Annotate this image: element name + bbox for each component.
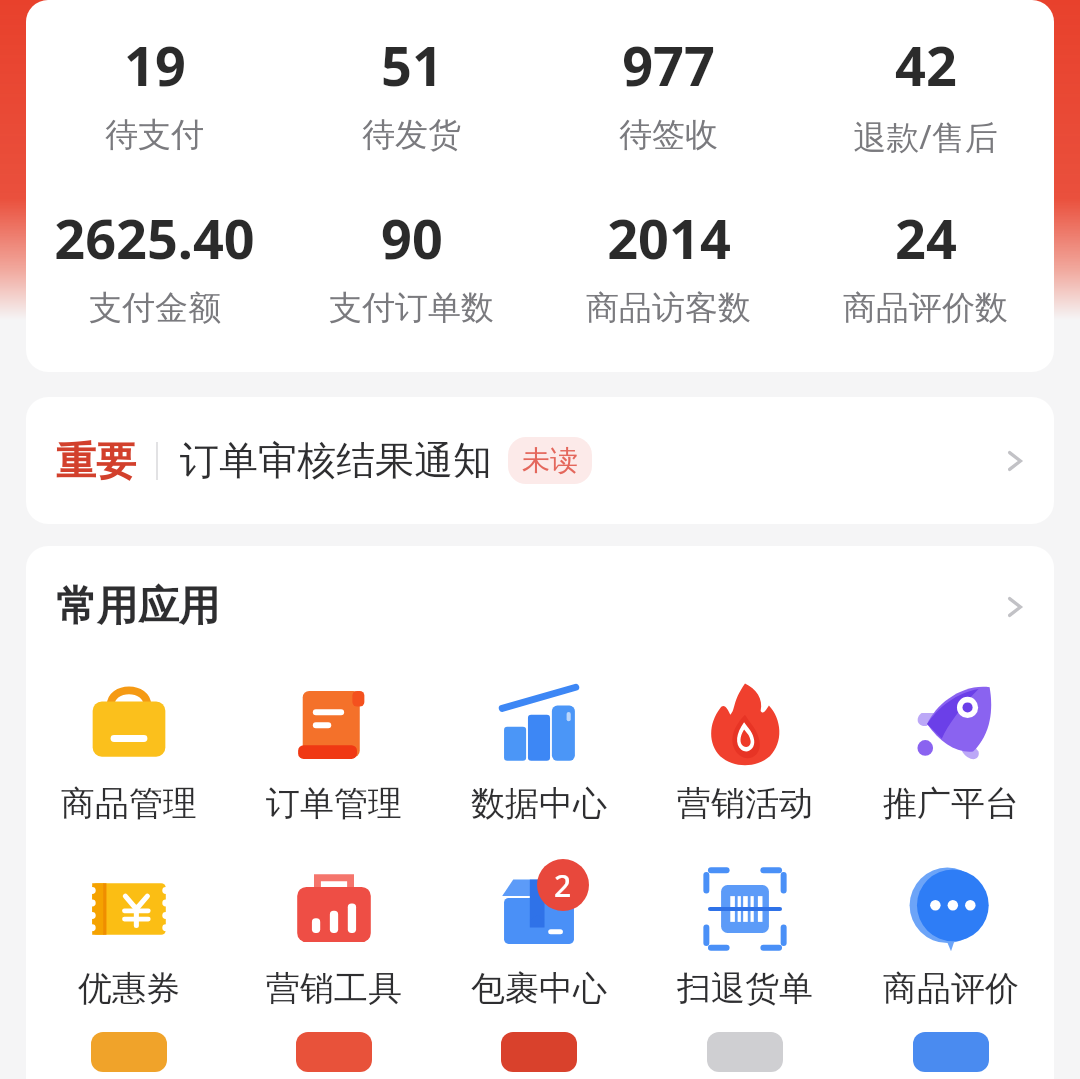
button[interactable]: 90: [283, 201, 540, 329]
staticText: 未读: [522, 443, 578, 478]
staticText: 商品访客数: [586, 287, 751, 329]
staticText: 重要: [56, 436, 136, 486]
staticText: 51: [381, 28, 443, 102]
staticText: 待签收: [619, 114, 718, 156]
button[interactable]: 42: [797, 28, 1054, 159]
button[interactable]: 优惠券: [26, 853, 231, 1014]
staticText: 营销工具: [266, 967, 402, 1010]
staticText: 977: [622, 28, 715, 102]
staticText: 营销活动: [677, 782, 813, 825]
button[interactable]: 24: [797, 201, 1054, 329]
staticText: 42: [895, 28, 957, 102]
button[interactable]: 营销活动: [642, 668, 848, 829]
other: Open: [1000, 592, 1030, 622]
button[interactable]: 2625.40: [26, 201, 283, 329]
other: Open: [1000, 446, 1030, 476]
button[interactable]: 商品评价: [848, 853, 1054, 1014]
staticText: 扫退货单: [677, 967, 813, 1010]
button[interactable]: 2: [436, 853, 642, 1014]
staticText: 90: [381, 201, 443, 275]
staticText: 待支付: [105, 114, 204, 156]
button[interactable]: 51: [283, 28, 540, 156]
button[interactable]: 19: [26, 28, 283, 156]
staticText: 待发货: [362, 114, 461, 156]
staticText: 支付金额: [89, 287, 221, 329]
staticText: 2: [554, 865, 572, 906]
staticText: 2014: [607, 201, 731, 275]
staticText: 推广平台: [883, 782, 1019, 825]
staticText: 2625.40: [54, 201, 255, 275]
button[interactable]: 977: [540, 28, 797, 156]
button[interactable]: 常用应用: [26, 546, 1054, 668]
button[interactable]: 推广平台: [848, 668, 1054, 829]
staticText: 24: [895, 201, 957, 275]
staticText: 退款/售后: [853, 114, 998, 159]
staticText: 19: [124, 28, 186, 102]
staticText: 商品管理: [61, 782, 197, 825]
staticText: 常用应用: [56, 581, 220, 633]
staticText: 数据中心: [471, 782, 607, 825]
button[interactable]: 扫退货单: [642, 853, 848, 1014]
staticText: 商品评价数: [843, 287, 1008, 329]
staticText: 订单管理: [266, 782, 402, 825]
button[interactable]: 数据中心: [436, 668, 642, 829]
staticText: 订单审核结果通知: [180, 436, 492, 485]
button[interactable]: 2014: [540, 201, 797, 329]
staticText: 支付订单数: [329, 287, 494, 329]
staticText: 优惠券: [78, 967, 180, 1010]
button[interactable]: 订单管理: [231, 668, 436, 829]
button[interactable]: 商品管理: [26, 668, 231, 829]
staticText: 商品评价: [883, 967, 1019, 1010]
staticText: 包裹中心: [471, 967, 607, 1010]
button[interactable]: 重要: [26, 397, 1054, 524]
button[interactable]: 营销工具: [231, 853, 436, 1014]
